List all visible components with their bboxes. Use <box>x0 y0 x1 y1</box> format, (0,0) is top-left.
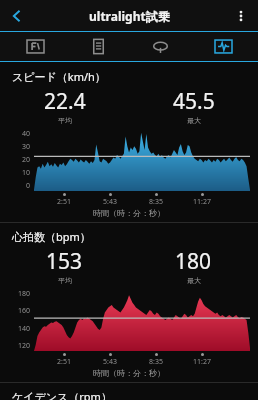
staticText: 8:35 <box>149 197 163 207</box>
staticText: 平均 <box>58 276 72 285</box>
staticText: 0 <box>26 181 31 191</box>
staticText: 11:27 <box>193 197 211 207</box>
staticText: 8:35 <box>149 357 163 367</box>
button[interactable]: Laps <box>132 32 188 61</box>
staticText: 5:43 <box>103 357 117 367</box>
staticText: 5:43 <box>103 197 117 207</box>
staticText: 時間（時：分：秒） <box>0 208 258 218</box>
staticText: 最大 <box>187 276 201 285</box>
staticText: 30 <box>22 142 31 152</box>
staticText: 153 <box>46 247 83 276</box>
staticText: 45.5 <box>173 87 215 116</box>
staticText: 140 <box>18 324 31 334</box>
button[interactable]: Charts <box>195 32 251 61</box>
staticText: 11:27 <box>193 357 211 367</box>
staticText: 2:51 <box>57 357 71 367</box>
staticText: ultralight試乗 <box>89 8 170 24</box>
staticText: 40 <box>22 129 31 139</box>
staticText: 120 <box>18 341 31 351</box>
staticText: 平均 <box>58 116 72 125</box>
button[interactable]: More options <box>224 0 258 31</box>
staticText: 心拍数（bpm） <box>12 229 91 244</box>
button[interactable]: Back <box>0 0 34 31</box>
staticText: 160 <box>18 306 31 316</box>
staticText: 180 <box>175 247 212 276</box>
staticText: 180 <box>18 289 31 299</box>
button[interactable]: Summary <box>70 32 126 61</box>
staticText: 最大 <box>187 116 201 125</box>
staticText: 10 <box>22 168 31 178</box>
staticText: 2:51 <box>57 197 71 207</box>
staticText: スピード（km/h） <box>12 69 106 84</box>
staticText: 22.4 <box>44 87 86 116</box>
staticText: 20 <box>22 155 31 165</box>
button[interactable]: Map <box>7 32 63 61</box>
staticText: 時間（時：分：秒） <box>0 368 258 378</box>
staticText: ケイデンス（rpm） <box>12 389 112 400</box>
